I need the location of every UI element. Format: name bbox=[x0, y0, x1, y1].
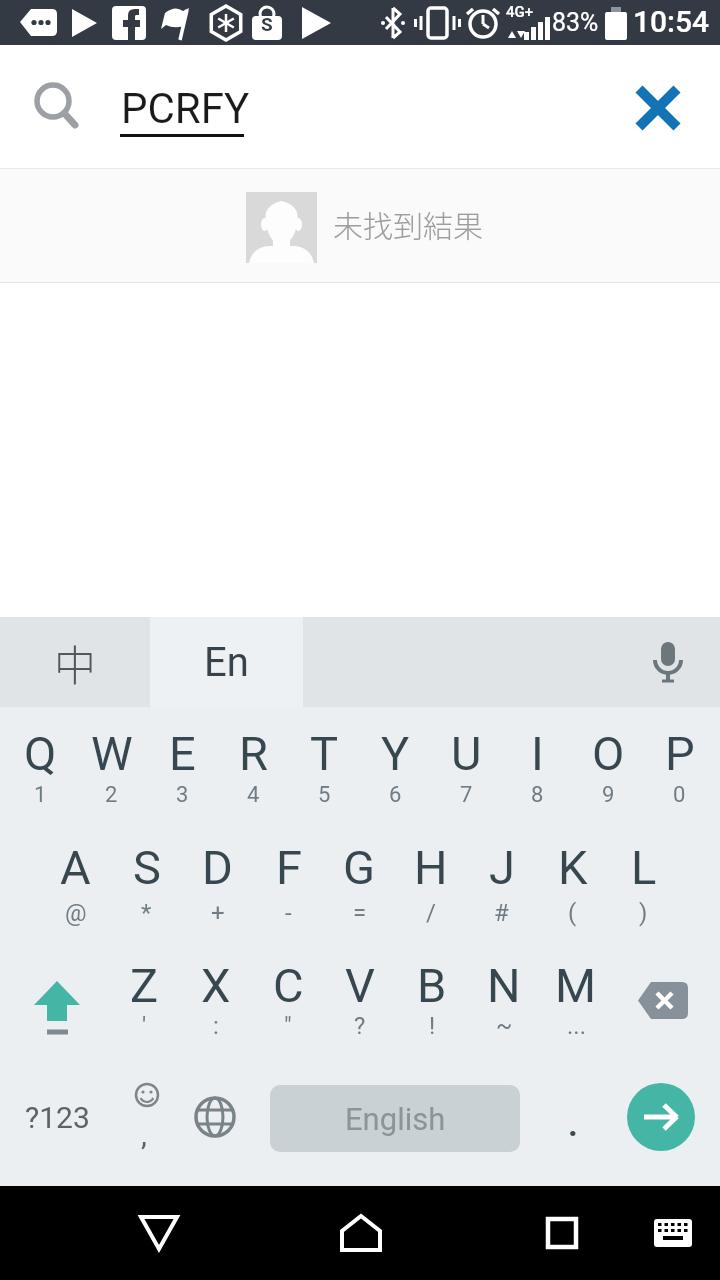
staticText: 4 bbox=[247, 782, 260, 808]
button[interactable]: 未找到結果 bbox=[0, 168, 720, 283]
button[interactable] bbox=[627, 1083, 695, 1151]
button[interactable]: Q bbox=[5, 723, 76, 784]
staticText: 中 bbox=[54, 632, 97, 693]
button[interactable]: Z bbox=[108, 955, 180, 1016]
staticText: 0 bbox=[673, 782, 686, 808]
staticText: 10:54 bbox=[633, 4, 710, 39]
staticText: = bbox=[353, 899, 367, 927]
staticText: ?123 bbox=[25, 1100, 90, 1135]
button[interactable]: X bbox=[180, 955, 252, 1016]
button[interactable]: R bbox=[218, 723, 289, 784]
button[interactable]: , bbox=[116, 1077, 176, 1157]
staticText: 4G+ bbox=[506, 3, 534, 21]
staticText: M bbox=[555, 958, 597, 1013]
button[interactable]: E bbox=[147, 723, 218, 784]
button[interactable]: 中 bbox=[0, 617, 150, 707]
button[interactable] bbox=[20, 971, 94, 1045]
button[interactable]: B bbox=[396, 955, 468, 1016]
button[interactable]: W bbox=[76, 723, 147, 784]
button[interactable]: O bbox=[573, 723, 644, 784]
staticText: " bbox=[284, 1012, 292, 1040]
staticText: 8 bbox=[531, 782, 544, 808]
button[interactable]: P bbox=[644, 723, 715, 784]
staticText: * bbox=[141, 899, 152, 927]
staticText: 未找到結果 bbox=[333, 202, 483, 245]
button[interactable] bbox=[119, 1193, 199, 1273]
staticText: PCRFY bbox=[121, 84, 250, 133]
staticText: E bbox=[169, 726, 196, 781]
button[interactable] bbox=[626, 970, 700, 1030]
staticText: T bbox=[310, 726, 339, 781]
staticText: C bbox=[273, 958, 304, 1013]
staticText: 9 bbox=[602, 782, 615, 808]
staticText: - bbox=[285, 899, 292, 927]
staticText: English bbox=[345, 1101, 446, 1137]
staticText: Q bbox=[24, 726, 57, 781]
staticText: ( bbox=[568, 899, 577, 927]
staticText: U bbox=[451, 726, 482, 781]
staticText: L bbox=[631, 840, 657, 895]
button[interactable]: M bbox=[540, 955, 612, 1016]
staticText: 1 bbox=[34, 782, 47, 808]
button[interactable] bbox=[321, 1193, 401, 1273]
button[interactable]: S bbox=[111, 837, 182, 898]
staticText: V bbox=[345, 958, 375, 1013]
button[interactable] bbox=[638, 1198, 708, 1268]
staticText: ... bbox=[567, 1012, 586, 1040]
staticText: K bbox=[558, 840, 588, 895]
staticText: Y bbox=[381, 726, 410, 781]
staticText: 5 bbox=[318, 782, 331, 808]
button[interactable]: K bbox=[537, 837, 608, 898]
button[interactable]: I bbox=[502, 723, 573, 784]
staticText: S bbox=[133, 840, 161, 895]
staticText: . bbox=[568, 1104, 578, 1144]
staticText: @ bbox=[65, 899, 87, 927]
staticText: ' bbox=[142, 1012, 147, 1040]
button[interactable]: N bbox=[468, 955, 540, 1016]
button[interactable] bbox=[185, 1087, 245, 1147]
button[interactable]: L bbox=[608, 837, 679, 898]
button[interactable] bbox=[638, 632, 698, 692]
button[interactable]: U bbox=[431, 723, 502, 784]
button[interactable] bbox=[522, 1193, 602, 1273]
button[interactable] bbox=[618, 68, 698, 148]
staticText: 2 bbox=[105, 782, 118, 808]
staticText: 6 bbox=[389, 782, 402, 808]
staticText: G bbox=[343, 840, 376, 895]
staticText: B bbox=[417, 958, 447, 1013]
button[interactable]: English bbox=[270, 1085, 520, 1152]
staticText: R bbox=[239, 726, 268, 781]
button[interactable]: D bbox=[182, 837, 253, 898]
staticText: F bbox=[276, 840, 302, 895]
button[interactable]: ?123 bbox=[12, 1087, 102, 1147]
button[interactable]: J bbox=[466, 837, 537, 898]
staticText: P bbox=[665, 726, 695, 781]
button[interactable]: En bbox=[150, 617, 303, 707]
staticText: , bbox=[141, 1117, 147, 1152]
staticText: H bbox=[414, 840, 448, 895]
button[interactable]: H bbox=[395, 837, 466, 898]
button[interactable]: G bbox=[324, 837, 395, 898]
staticText: 83% bbox=[552, 8, 599, 37]
staticText: ~ bbox=[496, 1012, 513, 1040]
staticText: I bbox=[531, 726, 544, 781]
staticText: W bbox=[91, 726, 133, 781]
button[interactable]: . bbox=[553, 1099, 593, 1149]
button[interactable]: F bbox=[253, 837, 324, 898]
staticText: S bbox=[261, 13, 273, 35]
staticText: X bbox=[201, 958, 231, 1013]
button[interactable]: C bbox=[252, 955, 324, 1016]
staticText: + bbox=[211, 899, 225, 927]
staticText: D bbox=[202, 840, 233, 895]
staticText: : bbox=[213, 1012, 219, 1040]
staticText: ) bbox=[639, 899, 648, 927]
staticText: 7 bbox=[460, 782, 473, 808]
button[interactable]: V bbox=[324, 955, 396, 1016]
button[interactable]: Y bbox=[360, 723, 431, 784]
staticText: J bbox=[489, 840, 515, 895]
button[interactable]: T bbox=[289, 723, 360, 784]
button[interactable]: A bbox=[40, 837, 111, 898]
staticText: ? bbox=[354, 1012, 366, 1040]
staticText: / bbox=[426, 899, 436, 927]
staticText: ! bbox=[429, 1012, 436, 1040]
